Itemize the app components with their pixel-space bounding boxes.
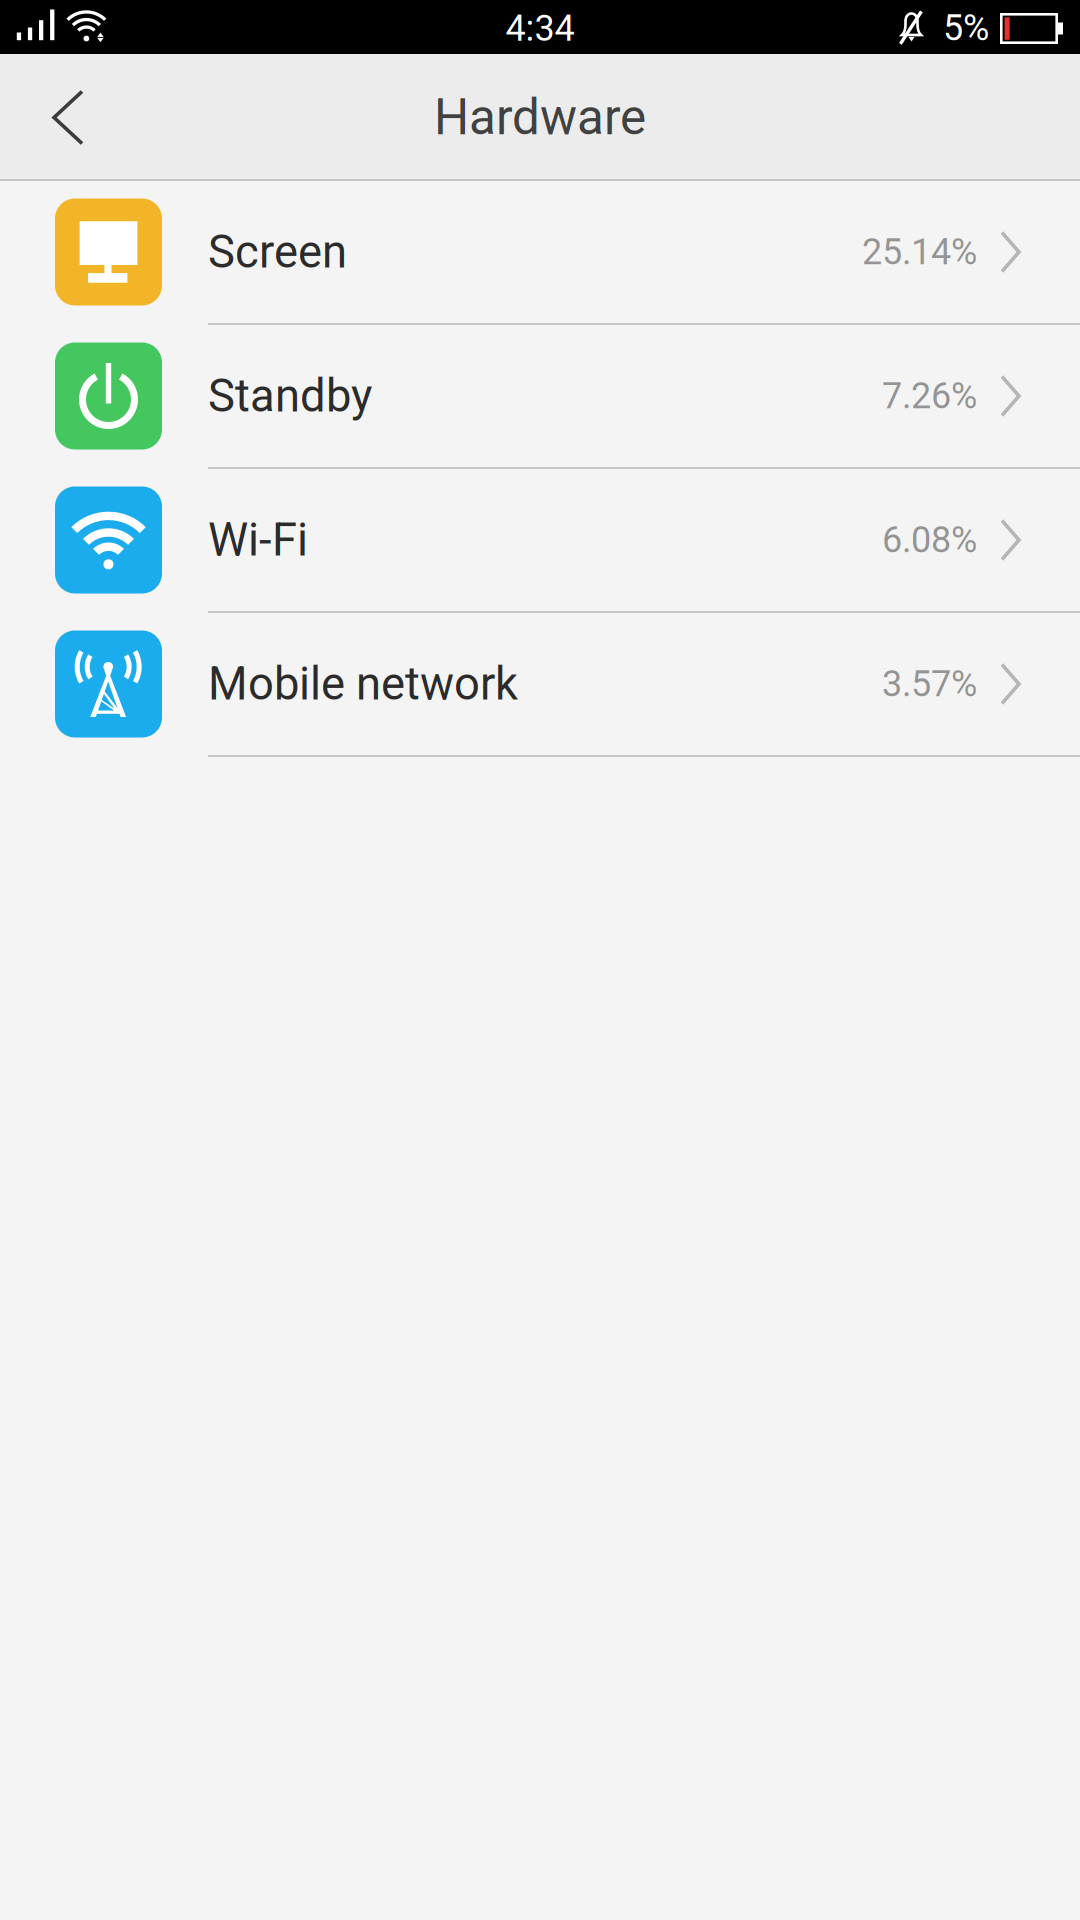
staticText: 4:34	[505, 7, 574, 50]
staticText: Wi-Fi	[208, 513, 308, 566]
button[interactable]: Screen	[0, 181, 1080, 325]
staticText: 25.14%	[862, 231, 977, 273]
staticText: 6.08%	[882, 519, 977, 561]
button[interactable]: Mobile network	[0, 613, 1080, 757]
staticText: 5%	[943, 7, 989, 49]
button[interactable]: Standby	[0, 325, 1080, 469]
staticText: 3.57%	[882, 663, 977, 705]
button[interactable]: Back	[0, 54, 136, 181]
staticText: Standby	[208, 369, 372, 422]
staticText: Mobile network	[208, 657, 518, 710]
staticText: Hardware	[434, 89, 646, 146]
staticText: 7.26%	[882, 375, 977, 417]
staticText: Screen	[208, 225, 347, 278]
button[interactable]: Wi-Fi	[0, 469, 1080, 613]
